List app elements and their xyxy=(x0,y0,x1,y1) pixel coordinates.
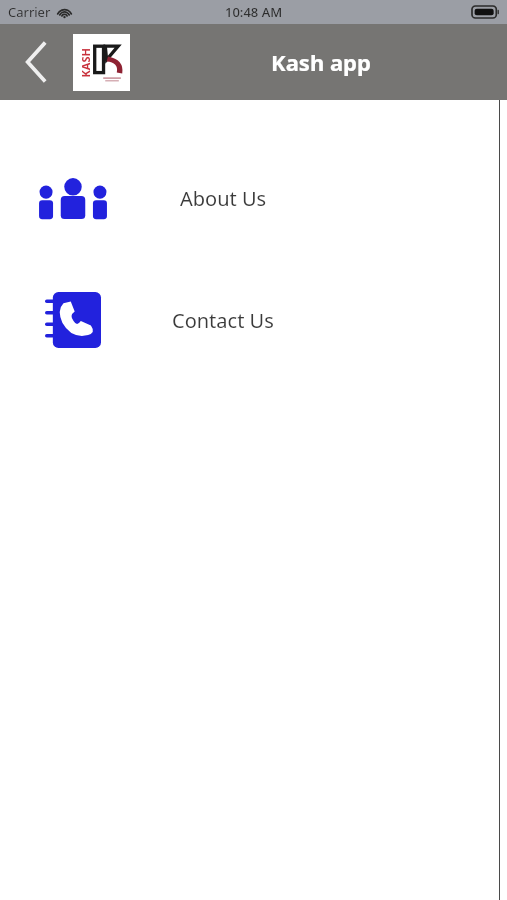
button[interactable]: About Us xyxy=(0,166,507,230)
staticText: Carrier xyxy=(8,3,51,21)
staticText: KASH xyxy=(77,47,92,77)
staticText: Contact Us xyxy=(172,307,274,334)
button[interactable]: Contact Us xyxy=(0,288,507,352)
staticText: Kash app xyxy=(271,47,371,77)
staticText: About Us xyxy=(180,185,267,212)
button[interactable]: Kash logo xyxy=(73,34,130,91)
staticText: 10:48 AM xyxy=(225,3,283,21)
button[interactable]: Back xyxy=(14,40,58,84)
